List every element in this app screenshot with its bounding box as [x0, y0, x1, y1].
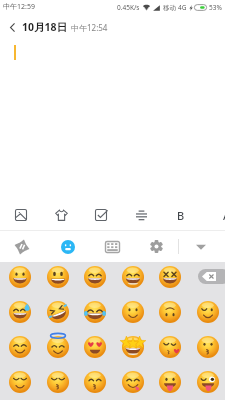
staticText: 0.45K/s: [117, 3, 140, 12]
button[interactable]: Emoji heart: [76, 329, 114, 364]
button[interactable]: Emoji kissWink: [151, 329, 189, 364]
button[interactable]: Keyboard: [96, 231, 128, 262]
button[interactable]: More options: [185, 231, 217, 262]
button[interactable]: Emoji blush: [1, 329, 39, 364]
button[interactable]: Emoji kiss2: [76, 364, 114, 399]
staticText: 移动: [163, 4, 176, 12]
staticText: 4G: [178, 3, 187, 12]
button[interactable]: Font style: [211, 202, 225, 228]
button[interactable]: Emoji wink: [189, 294, 225, 329]
button[interactable]: Emoji kissFace: [189, 329, 225, 364]
button[interactable]: Emoji star: [114, 329, 152, 364]
button[interactable]: Insert image: [5, 202, 37, 228]
button[interactable]: Emoji upside: [151, 294, 189, 329]
staticText: 中午12:54: [71, 22, 108, 33]
button[interactable]: Emoji joy: [76, 294, 114, 329]
staticText: A: [223, 208, 225, 223]
button[interactable]: Settings: [140, 231, 172, 262]
button[interactable]: Bold: [165, 202, 197, 228]
button[interactable]: Emoji beam: [114, 259, 152, 294]
button[interactable]: Align: [125, 202, 157, 228]
button[interactable]: Emoji grinSmileEyes: [76, 259, 114, 294]
button[interactable]: Emoji: [52, 231, 84, 262]
button[interactable]: Emoji halo: [39, 329, 77, 364]
button[interactable]: Emoji kissClosed: [39, 364, 77, 399]
button[interactable]: Emoji tongue: [151, 364, 189, 399]
button[interactable]: Input method: [6, 231, 38, 262]
button[interactable]: Emoji grin: [1, 259, 39, 294]
button[interactable]: Sticker: [45, 202, 77, 228]
staticText: 53%: [209, 3, 222, 12]
staticText: 10月18日: [22, 20, 68, 34]
button[interactable]: Emoji relieved: [1, 364, 39, 399]
button[interactable]: Emoji squint: [151, 259, 189, 294]
button[interactable]: Backspace: [198, 269, 225, 284]
button[interactable]: Emoji grinBig: [39, 259, 77, 294]
staticText: B: [177, 208, 185, 223]
button[interactable]: Emoji rofl: [39, 294, 77, 329]
button[interactable]: Emoji sweat: [1, 294, 39, 329]
button[interactable]: Emoji slight: [114, 294, 152, 329]
button[interactable]: Emoji yum: [114, 364, 152, 399]
button[interactable]: Emoji winkTongue: [189, 364, 225, 399]
staticText: 中午12:59: [3, 2, 35, 12]
button[interactable]: Checklist: [85, 202, 117, 228]
button[interactable]: Back: [0, 15, 24, 39]
